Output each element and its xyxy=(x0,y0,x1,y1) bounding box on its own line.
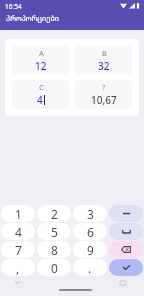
staticText: 2 xyxy=(51,206,58,222)
button[interactable]: Backspace xyxy=(109,241,143,258)
staticText: A xyxy=(39,48,44,58)
button[interactable]: 7 xyxy=(1,241,35,258)
button[interactable]: Enter xyxy=(109,259,143,276)
button[interactable]: C xyxy=(12,80,69,109)
staticText: 16:54 xyxy=(5,2,22,11)
button[interactable]: A xyxy=(12,46,69,74)
staticText: 0 xyxy=(51,260,58,276)
staticText: , xyxy=(16,260,20,276)
staticText: 7 xyxy=(15,242,22,258)
staticText: C xyxy=(39,82,44,92)
button[interactable]: B xyxy=(75,46,132,74)
staticText: 4 xyxy=(15,224,22,240)
button[interactable]: . xyxy=(73,259,107,276)
staticText: 32 xyxy=(98,59,110,73)
staticText: 1 xyxy=(15,206,22,222)
staticText: 5 xyxy=(51,224,58,240)
button[interactable]: 4 xyxy=(1,223,35,240)
staticText: 6 xyxy=(87,224,94,240)
button[interactable]: ? xyxy=(75,80,132,109)
button[interactable]: Minus xyxy=(109,205,143,222)
button[interactable]: 3 xyxy=(73,205,107,222)
button[interactable]: 0 xyxy=(37,259,71,276)
button[interactable]: 6 xyxy=(73,223,107,240)
button[interactable]: 8 xyxy=(37,241,71,258)
staticText: 8 xyxy=(51,242,58,258)
staticText: 4 xyxy=(37,93,43,107)
button[interactable]: 1 xyxy=(1,205,35,222)
button[interactable]: 9 xyxy=(73,241,107,258)
staticText: B xyxy=(102,48,107,58)
button[interactable]: 5 xyxy=(37,223,71,240)
button[interactable]: 2 xyxy=(37,205,71,222)
staticText: 9 xyxy=(87,242,94,258)
button[interactable]: , xyxy=(1,259,35,276)
staticText: 12 xyxy=(35,59,47,73)
staticText: პროპორციები xyxy=(6,13,59,23)
button[interactable]: Space xyxy=(109,223,143,240)
staticText: . xyxy=(88,260,92,276)
staticText: 10,67 xyxy=(91,93,117,107)
staticText: 3 xyxy=(87,206,94,222)
staticText: ? xyxy=(102,82,106,92)
